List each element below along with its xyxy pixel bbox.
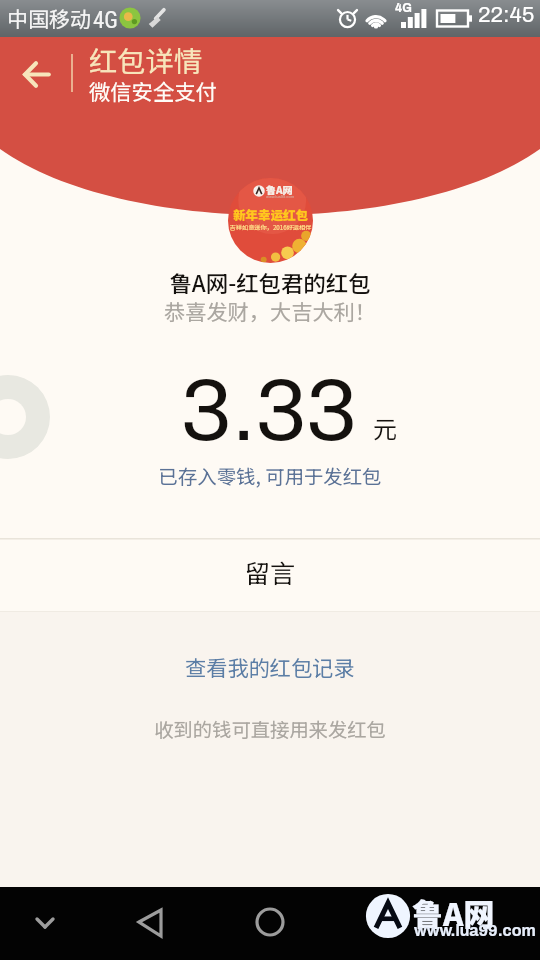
staticText: 留言 — [0, 554, 540, 590]
button[interactable]: Sender avatar — [228, 178, 313, 263]
staticText: 鲁A网 — [266, 182, 293, 196]
staticText: 已存入零钱, 可用于发红包 — [0, 461, 540, 489]
staticText: www.lua99.com — [414, 922, 536, 939]
staticText: 鲁A网-红包君的红包 — [0, 266, 540, 298]
staticText: 鲁A网 — [412, 890, 495, 935]
staticText: 收到的钱可直接用来发红包 — [0, 715, 540, 743]
staticText: 中国移动 — [7, 3, 91, 33]
staticText: 查看我的红包记录 — [185, 651, 355, 682]
staticText: 3.33 — [181, 363, 357, 459]
staticText: 微信安全支付 — [89, 75, 217, 106]
staticText: 4G — [93, 7, 118, 34]
staticText: 元 — [373, 410, 397, 445]
staticText: 吉祥如意送你，2016好运相伴 — [229, 223, 312, 232]
staticText: www.lua99.com — [266, 194, 295, 198]
button[interactable]: 查看我的红包记录 — [0, 641, 540, 691]
staticText: 22:45 — [478, 3, 535, 27]
staticText: 红包详情 — [89, 39, 203, 80]
staticText: 恭喜发财，大吉大利！ — [0, 295, 540, 326]
button[interactable]: Back — [8, 46, 64, 102]
staticText: 4G — [395, 1, 412, 14]
staticText: 新年幸运红包 — [229, 205, 312, 223]
